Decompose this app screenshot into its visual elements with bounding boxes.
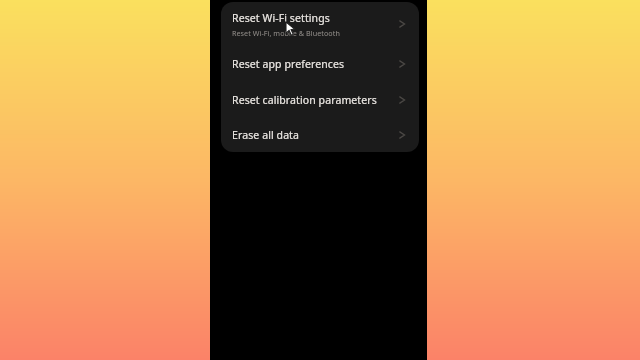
button[interactable]: Erase all data — [221, 118, 419, 152]
staticText: Reset calibration parameters — [232, 93, 377, 107]
button[interactable]: Reset Wi-Fi settings — [221, 2, 419, 46]
staticText: Erase all data — [232, 128, 300, 142]
other: Reset app preferences — [396, 57, 410, 71]
other: Reset Wi-Fi settings — [396, 17, 410, 31]
other: Erase all data — [396, 128, 410, 142]
staticText: Reset app preferences — [232, 57, 345, 71]
button[interactable]: Reset app preferences — [221, 46, 419, 82]
staticText: Reset Wi-Fi, mobile & Bluetooth — [232, 28, 340, 38]
staticText: Reset Wi-Fi settings — [232, 11, 330, 25]
button[interactable]: Reset calibration parameters — [221, 82, 419, 118]
other: Reset calibration parameters — [396, 93, 410, 107]
